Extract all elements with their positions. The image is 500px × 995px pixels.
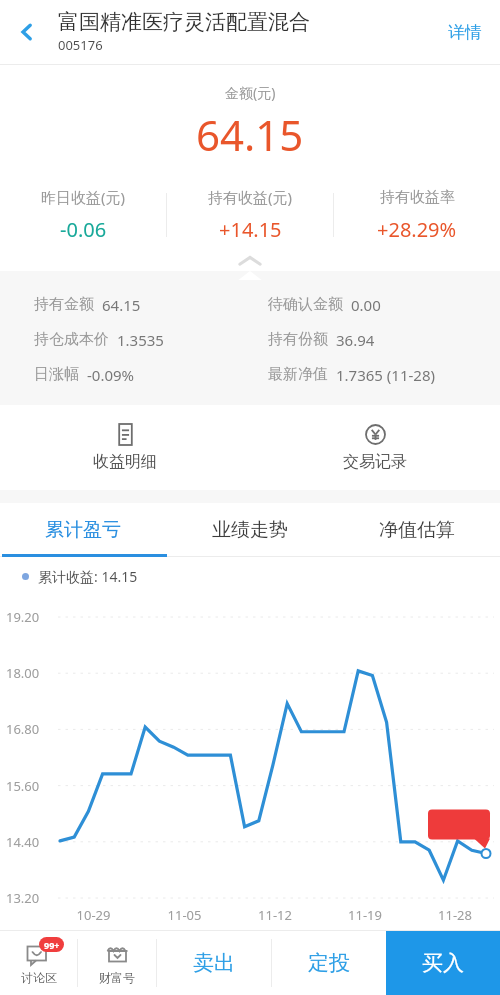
staticText: 详情 <box>448 22 482 43</box>
staticText: 业绩走势 <box>212 518 288 542</box>
button[interactable]: 持有收益(元) <box>167 181 333 249</box>
button[interactable]: 昨日收益(元) <box>0 181 166 249</box>
staticText: 富国精准医疗灵活配置混合 <box>58 9 310 35</box>
staticText: 定投 <box>308 950 350 976</box>
staticText: -0.09% <box>87 365 135 385</box>
button[interactable]: 交易记录 <box>250 405 500 490</box>
staticText: 15.60 <box>6 777 40 795</box>
staticText: 14.40 <box>6 833 40 851</box>
staticText: 卖出 <box>193 950 235 976</box>
staticText: +28.29% <box>377 216 457 243</box>
staticText: +14.15 <box>219 216 282 243</box>
staticText: 10-29 <box>48 906 139 924</box>
staticText: 13.20 <box>6 889 40 907</box>
button[interactable]: Collapse <box>234 254 266 267</box>
button[interactable]: 持有收益率 <box>334 181 500 249</box>
button[interactable]: 财富号 <box>78 931 156 995</box>
staticText: 1.7365 (11-28) <box>336 365 435 385</box>
staticText: 财富号 <box>99 970 135 985</box>
staticText: 持有金额 <box>34 295 94 314</box>
button[interactable]: 定投 <box>272 931 386 995</box>
staticText: 最新净值 <box>268 365 328 384</box>
staticText: 19.20 <box>6 608 40 626</box>
staticText: 36.94 <box>336 330 375 350</box>
staticText: 1.3535 <box>117 330 164 350</box>
staticText: 11-19 <box>320 906 410 924</box>
staticText: 16.80 <box>6 720 40 738</box>
staticText: 交易记录 <box>343 452 407 472</box>
staticText: 净值估算 <box>379 518 455 542</box>
staticText: 64.15 <box>102 295 141 315</box>
button[interactable]: Back <box>4 9 50 55</box>
staticText: 累计收益: 14.15 <box>38 567 138 586</box>
staticText: 累计盈亏 <box>45 518 121 542</box>
staticText: 持有收益(元) <box>208 187 293 207</box>
staticText: 待确认金额 <box>268 295 343 314</box>
staticText: 昨日收益(元) <box>41 187 126 207</box>
button[interactable]: 收益明细 <box>0 405 250 490</box>
staticText: 持仓成本价 <box>34 330 109 349</box>
staticText: 金额(元) <box>225 83 276 102</box>
button[interactable]: 卖出 <box>157 931 271 995</box>
staticText: 005176 <box>58 36 103 54</box>
staticText: 11-05 <box>139 906 230 924</box>
staticText: 日涨幅 <box>34 365 79 384</box>
button[interactable]: 详情 <box>440 14 490 51</box>
button[interactable]: 讨论区 <box>0 931 77 995</box>
staticText: 64.15 <box>196 106 304 163</box>
staticText: 11-12 <box>230 906 320 924</box>
staticText: 持有份额 <box>268 330 328 349</box>
staticText: 18.00 <box>6 664 40 682</box>
staticText: 讨论区 <box>21 970 57 985</box>
staticText: 99+ <box>44 939 60 951</box>
staticText: 收益明细 <box>93 452 157 472</box>
button[interactable]: 业绩走势 <box>166 503 333 557</box>
staticText: 买入 <box>422 950 464 976</box>
staticText: -0.06 <box>60 216 107 243</box>
button[interactable]: 买入 <box>386 931 500 995</box>
staticText: 0.00 <box>351 295 381 315</box>
staticText: 持有收益率 <box>380 188 455 207</box>
staticText: 11-28 <box>410 906 500 924</box>
button[interactable]: 累计盈亏 <box>0 503 166 557</box>
button[interactable]: 净值估算 <box>333 503 500 557</box>
